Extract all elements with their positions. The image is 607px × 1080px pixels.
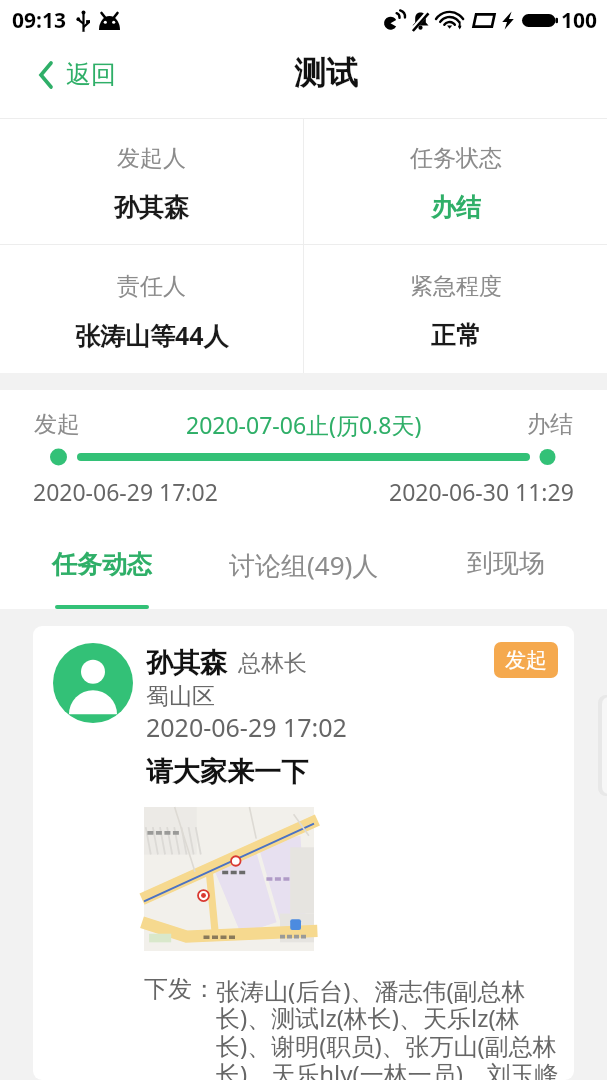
staticText: 任务动态 bbox=[52, 549, 152, 580]
staticText: 孙其森 bbox=[114, 192, 189, 223]
staticText: 张涛山(后台)、潘志伟(副总林长)、测试lz(林长)、天乐lz(林长)、谢明(职… bbox=[216, 974, 570, 1080]
button[interactable]: 到现场 bbox=[405, 533, 607, 609]
staticText: 返回 bbox=[66, 59, 116, 90]
staticText: 蜀山区 bbox=[146, 682, 215, 711]
staticText: 总林长 bbox=[238, 649, 307, 678]
staticText: 请大家来一下 bbox=[146, 755, 308, 789]
staticText: 讨论组(49)人 bbox=[229, 547, 379, 583]
staticText: 发起人 bbox=[117, 144, 186, 173]
button[interactable]: 返回 bbox=[0, 51, 134, 98]
staticText: 测试 bbox=[294, 53, 358, 93]
staticText: 张涛山等44人 bbox=[75, 318, 229, 352]
staticText: 2020-06-30 11:29 bbox=[389, 476, 574, 507]
staticText: 孙其森 bbox=[146, 646, 227, 680]
staticText: 2020-07-06止(历0.8天) bbox=[186, 409, 422, 440]
staticText: 正常 bbox=[431, 320, 481, 351]
staticText: 到现场 bbox=[467, 547, 545, 580]
button[interactable]: 责任人 bbox=[0, 245, 303, 373]
staticText: 发起 bbox=[505, 647, 547, 673]
button[interactable]: 讨论组(49)人 bbox=[203, 533, 405, 609]
button[interactable]: 发起人 bbox=[0, 119, 303, 244]
button[interactable]: User avatar bbox=[33, 626, 574, 1080]
button[interactable]: 任务动态 bbox=[0, 533, 203, 609]
button[interactable]: User avatar bbox=[53, 643, 133, 723]
staticText: 下发： bbox=[144, 974, 216, 1004]
button[interactable]: Map location bbox=[144, 807, 314, 951]
button[interactable]: 紧急程度 bbox=[304, 245, 607, 373]
staticText: 发起 bbox=[34, 410, 80, 439]
staticText: 2020-06-29 17:02 bbox=[146, 710, 347, 744]
staticText: 责任人 bbox=[117, 272, 186, 301]
button[interactable]: 发起 bbox=[494, 642, 558, 678]
staticText: 100 bbox=[561, 6, 598, 35]
staticText: 办结 bbox=[527, 410, 573, 439]
staticText: 09:13 bbox=[12, 6, 66, 35]
staticText: 紧急程度 bbox=[410, 272, 502, 301]
staticText: 2020-06-29 17:02 bbox=[33, 476, 218, 507]
staticText: 任务状态 bbox=[410, 144, 502, 173]
button[interactable]: 任务状态 bbox=[304, 119, 607, 244]
staticText: 办结 bbox=[431, 192, 481, 223]
